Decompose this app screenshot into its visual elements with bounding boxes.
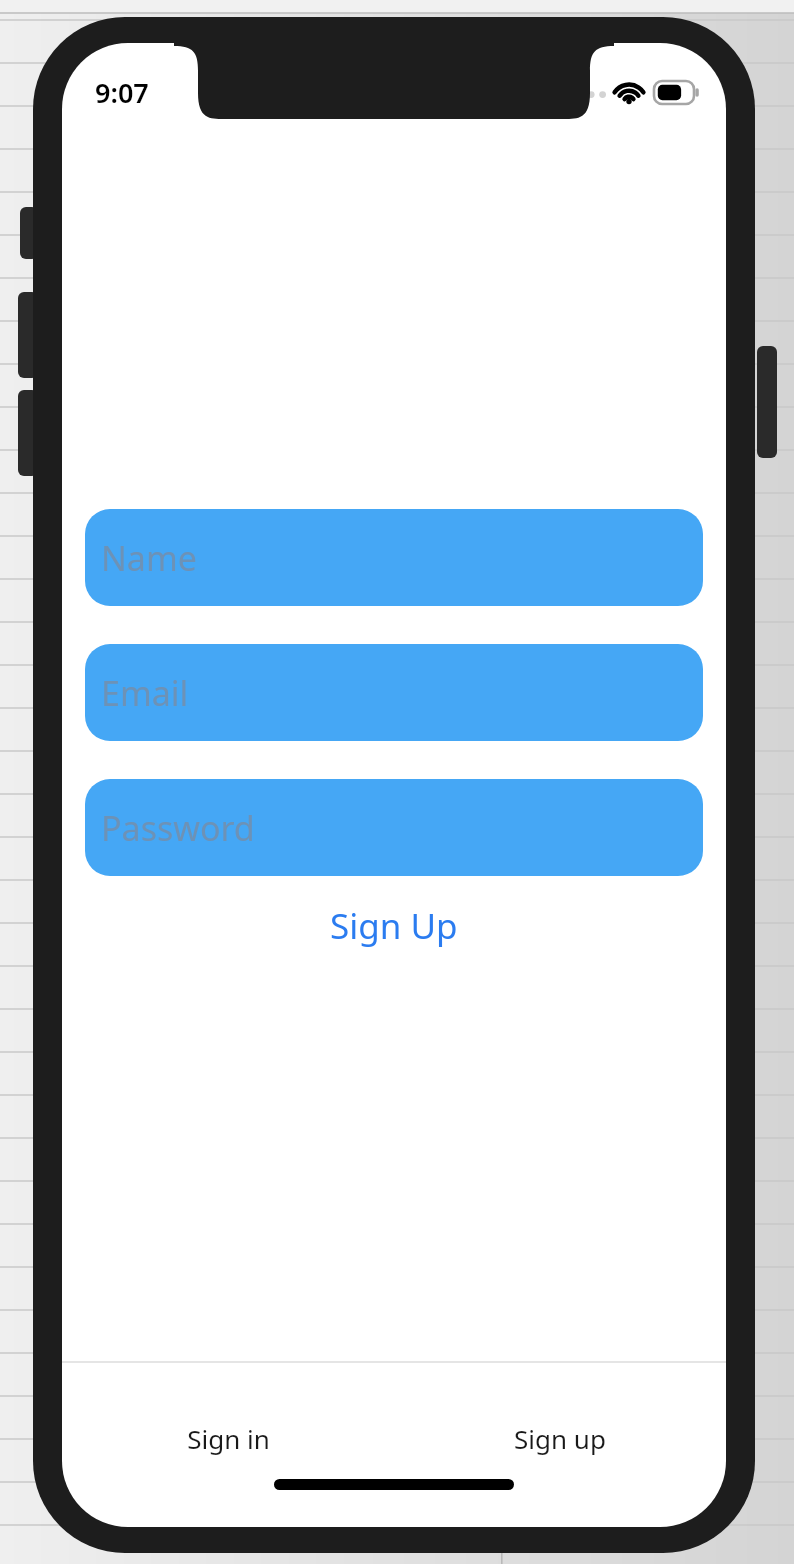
staticText: Sign Up (330, 902, 458, 950)
button[interactable]: Sign up (394, 1363, 726, 1479)
staticText: Sign in (187, 1421, 270, 1456)
staticText: Email (101, 670, 189, 716)
button[interactable]: Name (85, 509, 703, 606)
button[interactable]: Password (85, 779, 703, 876)
button[interactable]: Email (85, 644, 703, 741)
button[interactable]: Sign Up (62, 892, 726, 960)
staticText: Sign up (514, 1421, 606, 1456)
staticText: Password (101, 805, 255, 851)
staticText: Name (101, 535, 197, 581)
staticText: 9:07 (95, 74, 149, 111)
button[interactable]: Sign in (62, 1363, 394, 1479)
